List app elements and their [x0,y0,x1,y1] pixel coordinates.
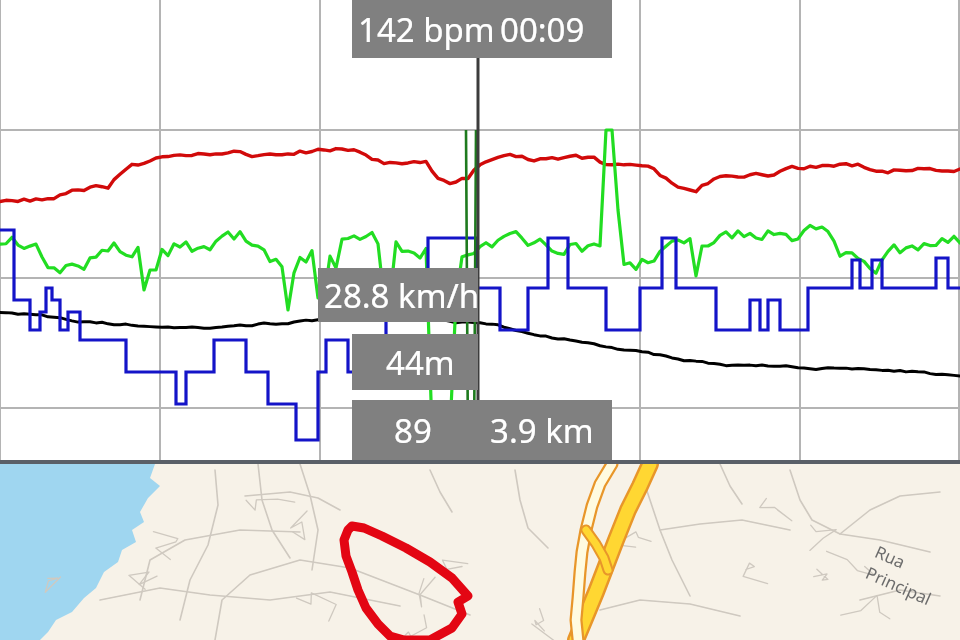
button[interactable]: Activity chart and map [0,0,960,640]
